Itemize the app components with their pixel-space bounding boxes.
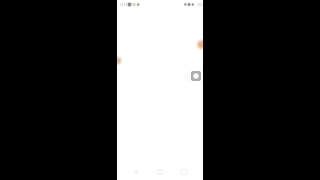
button[interactable]: Media bbox=[191, 71, 201, 81]
button[interactable]: Recents bbox=[179, 167, 189, 176]
button[interactable]: Home bbox=[155, 167, 165, 176]
button[interactable]: Back bbox=[131, 167, 141, 176]
